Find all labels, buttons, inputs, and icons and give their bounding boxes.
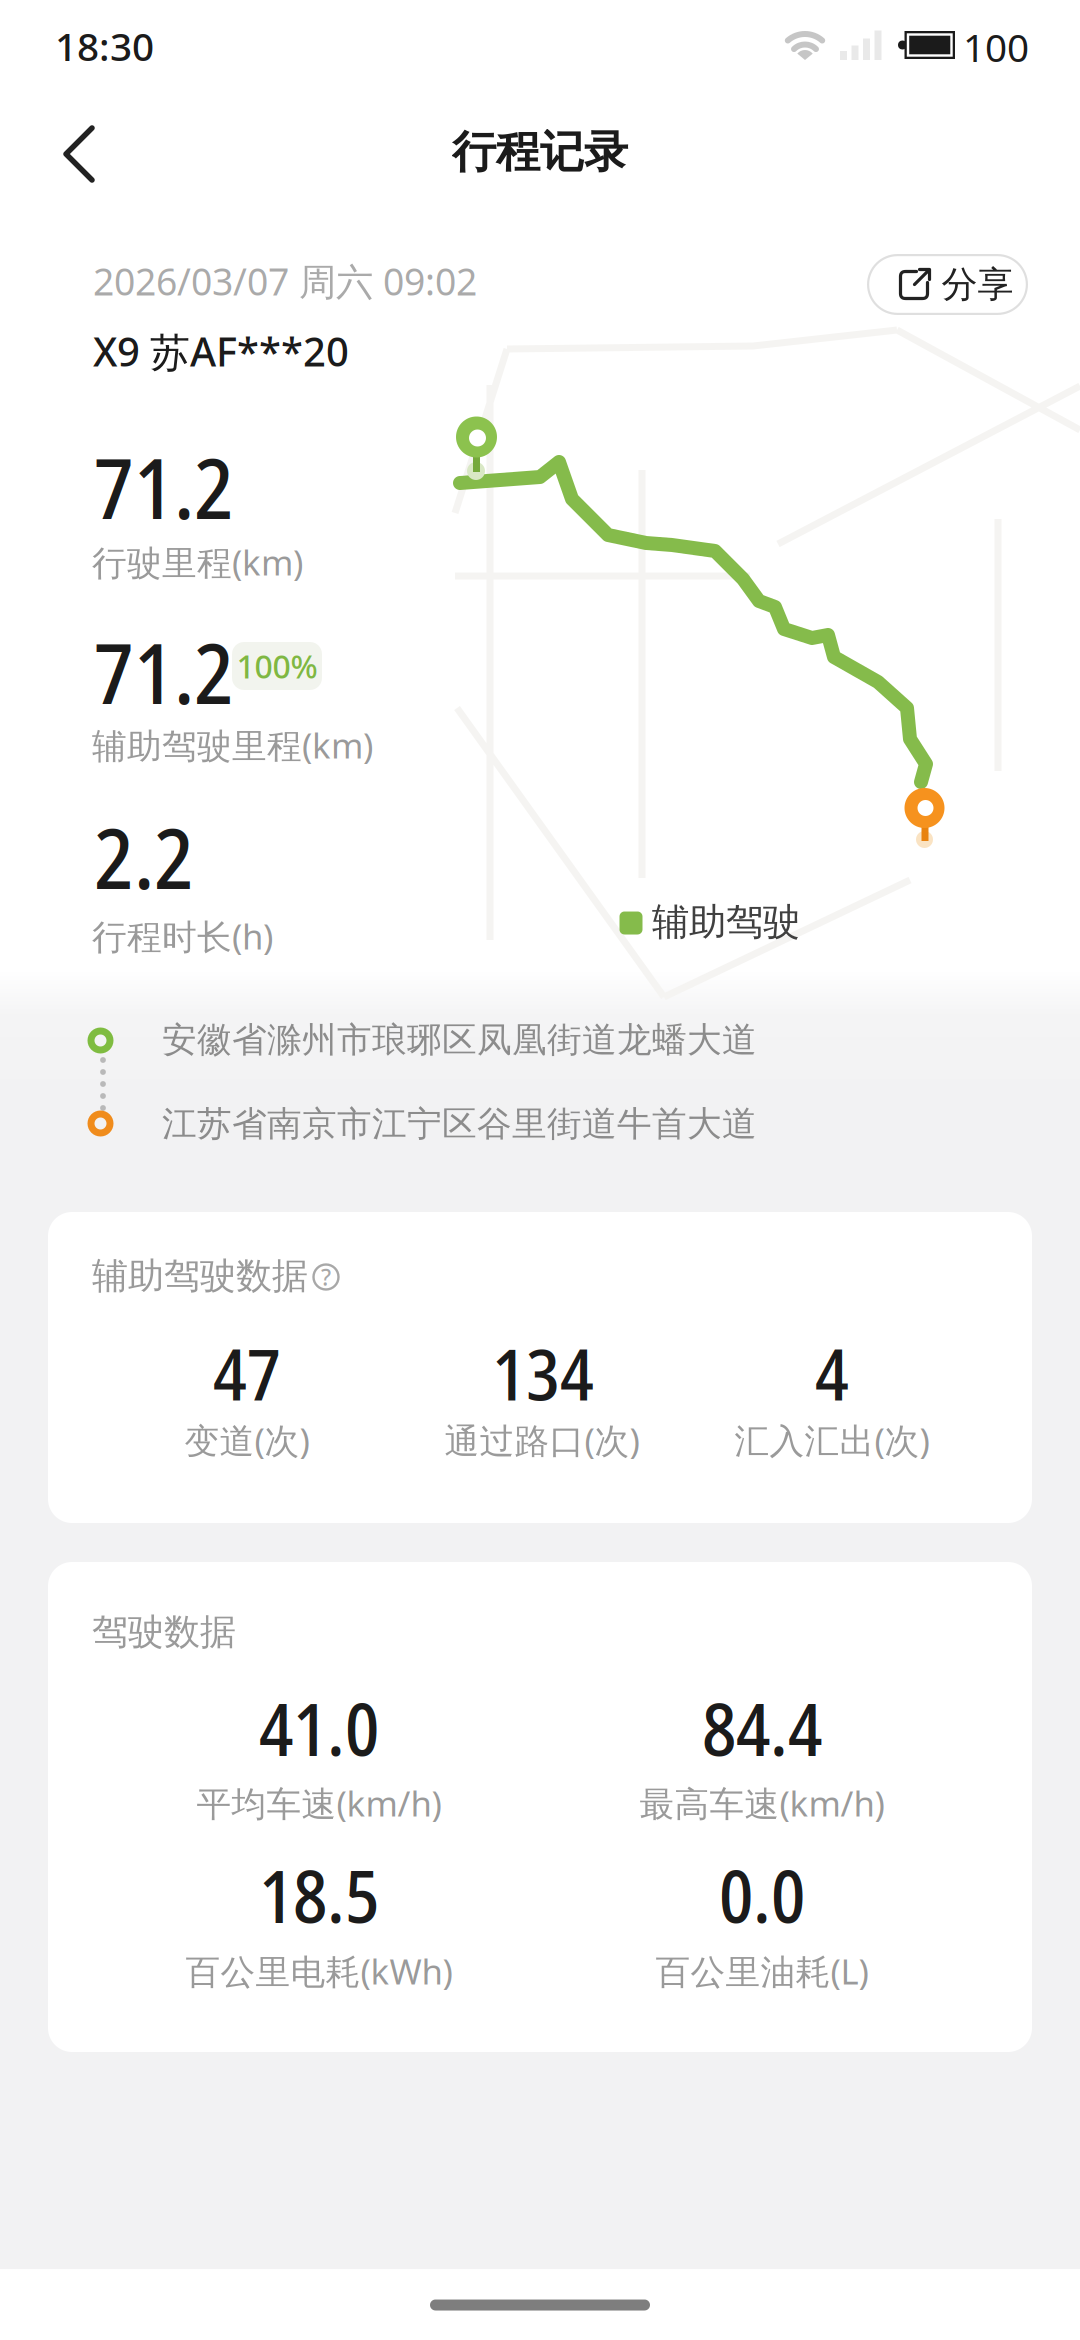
staticText: 汇入汇出(次) (734, 1417, 929, 1463)
staticText: 最高车速(km/h) (639, 1780, 884, 1826)
staticText: 百公里电耗(kWh) (185, 1948, 452, 1994)
staticText: 通过路口(次) (444, 1417, 639, 1463)
button[interactable]: Back (36, 110, 124, 198)
staticText: 100 (963, 21, 1029, 73)
staticText: 驾驶数据 (92, 1610, 236, 1654)
staticText: 辅助驾驶 (652, 899, 800, 945)
staticText: 100% (236, 645, 317, 687)
staticText: ? (321, 1262, 331, 1292)
staticText: 47 (213, 1325, 281, 1421)
staticText: 71.2 (94, 431, 234, 543)
staticText: 18:30 (55, 20, 154, 72)
staticText: 百公里油耗(L) (655, 1948, 868, 1994)
staticText: 辅助驾驶数据 (92, 1254, 308, 1298)
staticText: 安徽省滁州市琅琊区凤凰街道龙蟠大道 (162, 1019, 757, 1061)
staticText: X9 苏AF***20 (93, 324, 349, 378)
staticText: 平均车速(km/h) (196, 1780, 441, 1826)
staticText: 4 (815, 1325, 849, 1421)
staticText: 变道(次) (184, 1417, 309, 1463)
staticText: 134 (492, 1325, 594, 1421)
staticText: 分享 (941, 262, 1013, 307)
staticText: 2.2 (94, 801, 194, 913)
staticText: 71.2 (94, 616, 234, 728)
staticText: 84.4 (702, 1679, 822, 1777)
staticText: 0.0 (719, 1846, 805, 1944)
staticText: 辅助驾驶里程(km) (92, 722, 373, 768)
staticText: 41.0 (259, 1679, 379, 1777)
staticText: 18.5 (259, 1846, 379, 1944)
button[interactable]: 帮助 (306, 1257, 346, 1297)
button[interactable]: 分享 (867, 254, 1028, 315)
staticText: 行程时长(h) (92, 913, 273, 959)
staticText: 江苏省南京市江宁区谷里街道牛首大道 (162, 1103, 757, 1145)
staticText: 2026/03/07 周六 09:02 (93, 256, 477, 306)
staticText: 行程记录 (452, 125, 628, 179)
staticText: 行驶里程(km) (92, 539, 303, 585)
